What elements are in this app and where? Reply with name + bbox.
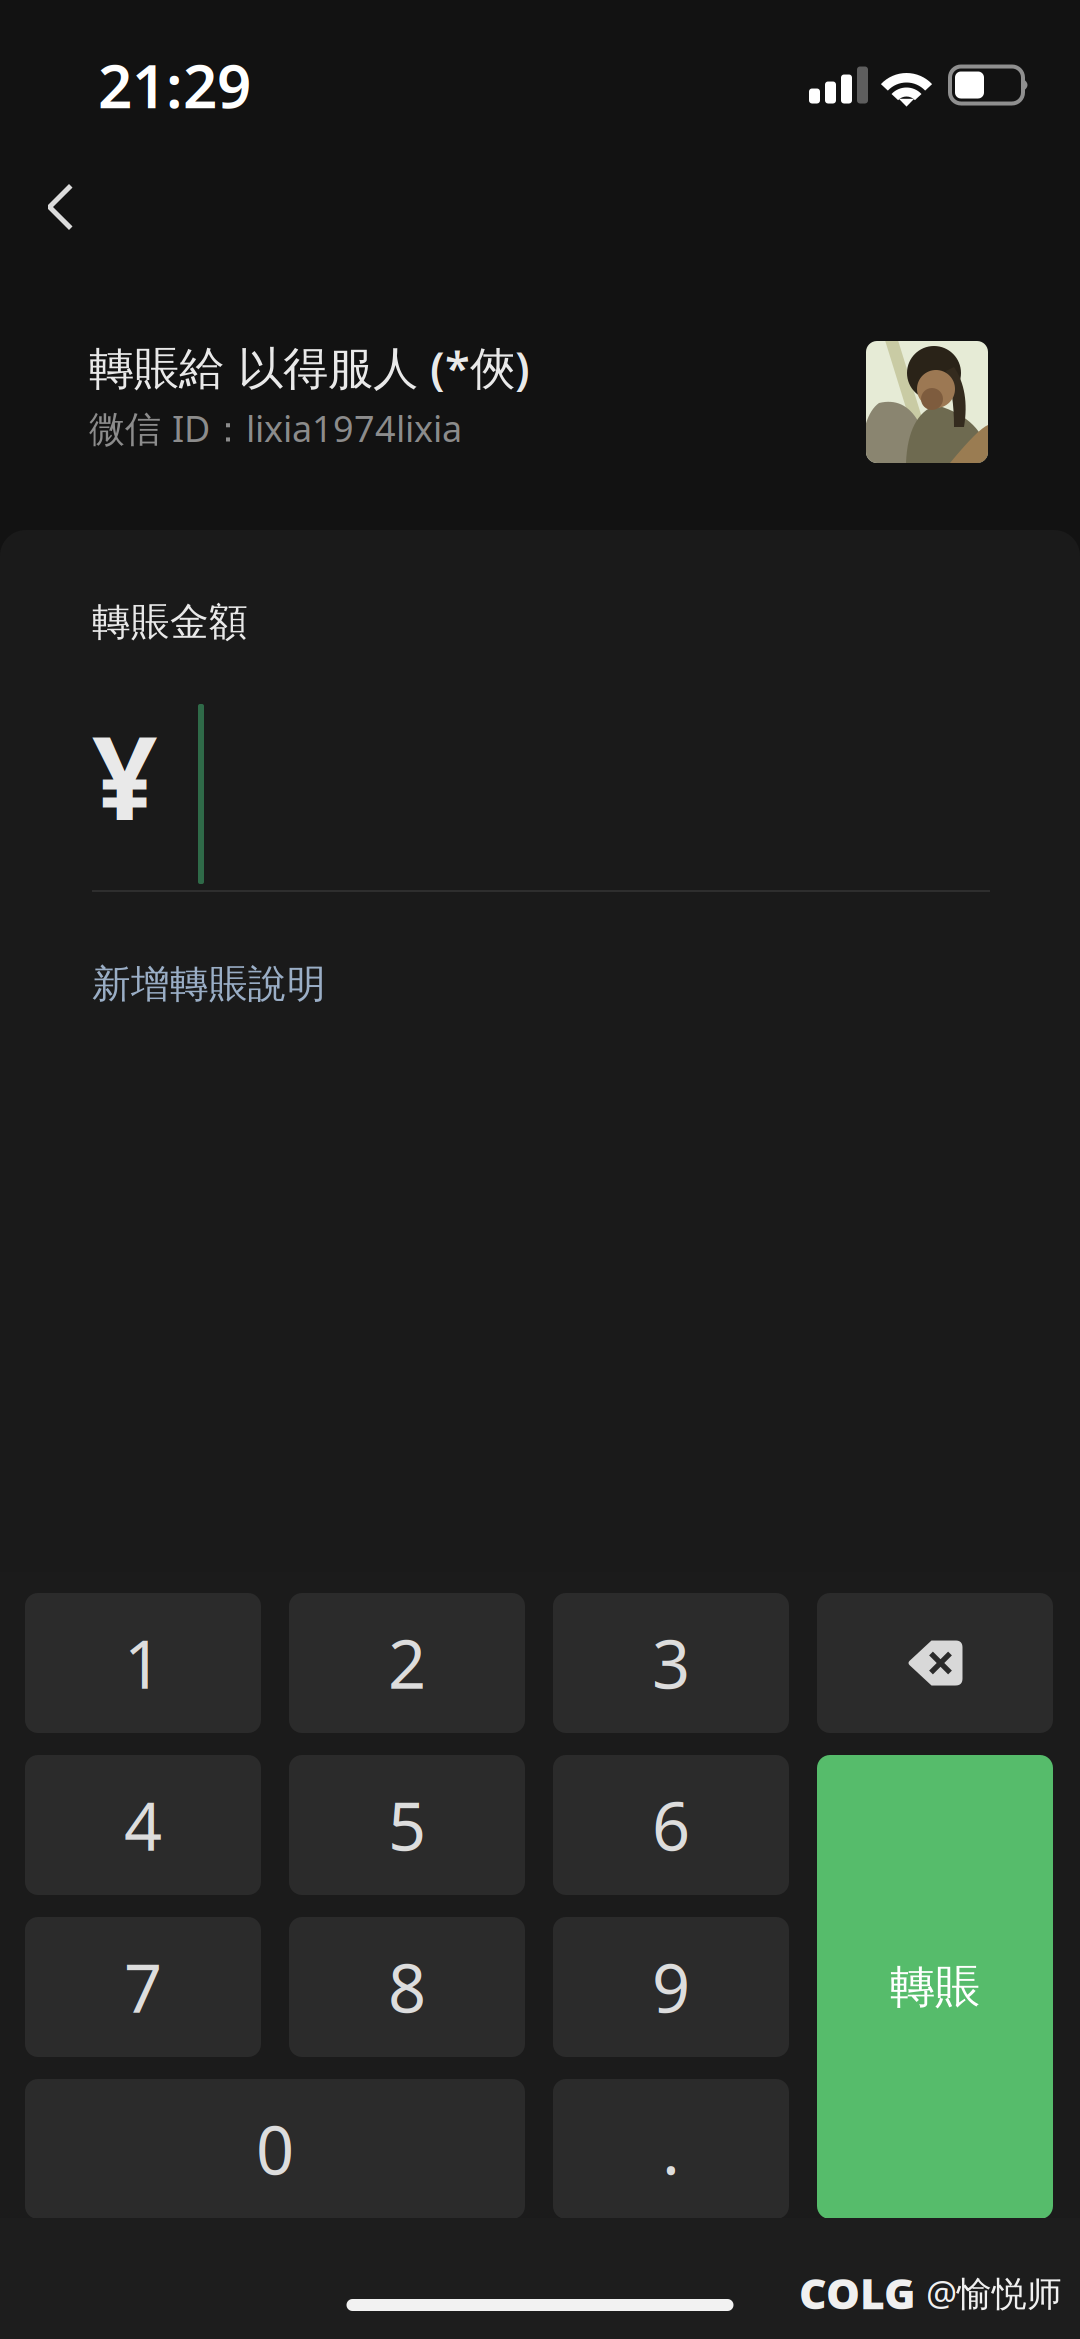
button[interactable]: 8	[289, 1917, 525, 2057]
staticText: 0	[256, 2105, 294, 2193]
button[interactable]: 4	[25, 1755, 261, 1895]
staticText: 5	[388, 1781, 426, 1869]
staticText: 2	[388, 1619, 426, 1707]
staticText: 3	[652, 1619, 690, 1707]
staticText: 7	[124, 1943, 162, 2031]
staticText: 21:29	[98, 45, 251, 125]
staticText: 1	[124, 1619, 162, 1707]
button[interactable]: .	[553, 2079, 789, 2219]
staticText: 新增轉賬說明	[92, 960, 326, 1008]
button[interactable]: Delete	[817, 1593, 1053, 1733]
button[interactable]: 5	[289, 1755, 525, 1895]
button[interactable]: 2	[289, 1593, 525, 1733]
staticText: 轉賬金額	[92, 598, 248, 646]
staticText: 轉賬	[890, 1959, 980, 2015]
staticText: 6	[652, 1781, 690, 1869]
button[interactable]: 7	[25, 1917, 261, 2057]
staticText: 轉賬給 以得服人 (*俠)	[89, 337, 530, 397]
button[interactable]: 0	[25, 2079, 525, 2219]
staticText: 微信 ID：lixia1974lixia	[89, 404, 462, 452]
staticText: ¥	[92, 699, 158, 851]
button[interactable]: 1	[25, 1593, 261, 1733]
button[interactable]: 新增轉賬說明	[0, 892, 354, 1036]
button[interactable]: 轉賬	[817, 1755, 1053, 2219]
button[interactable]: 9	[553, 1917, 789, 2057]
button[interactable]: Back	[0, 128, 103, 254]
staticText: @愉悦师	[926, 2270, 1062, 2316]
staticText: COLG	[799, 2264, 916, 2321]
staticText: 9	[652, 1943, 690, 2031]
button[interactable]: 3	[553, 1593, 789, 1733]
staticText: 8	[388, 1943, 426, 2031]
button[interactable]: 6	[553, 1755, 789, 1895]
staticText: .	[662, 2105, 680, 2193]
staticText: 4	[124, 1781, 162, 1869]
